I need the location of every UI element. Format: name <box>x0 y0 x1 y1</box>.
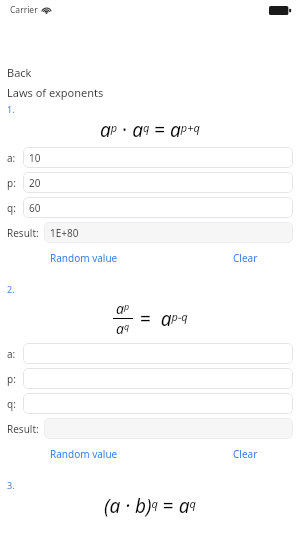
button[interactable]: 60 <box>23 197 293 218</box>
button[interactable]: Clear <box>231 445 260 463</box>
staticText: 2. <box>7 283 15 295</box>
staticText: (a · b)q = aq <box>104 493 196 519</box>
staticText: p: <box>7 176 16 190</box>
button[interactable] <box>23 393 293 414</box>
staticText: 1. <box>7 103 15 115</box>
staticText: a: <box>7 151 16 165</box>
staticText: Clear <box>233 251 258 265</box>
staticText: 10 <box>29 151 41 165</box>
staticText: p: <box>7 372 16 386</box>
staticText: q: <box>7 201 16 215</box>
staticText: 3. <box>7 479 15 491</box>
button[interactable]: Clear <box>231 249 260 267</box>
staticText: 20 <box>29 176 41 190</box>
staticText: 60 <box>29 201 41 215</box>
button[interactable] <box>23 368 293 389</box>
staticText: Random value <box>50 447 118 461</box>
staticText: ap <box>116 299 130 318</box>
staticText: q: <box>7 397 16 411</box>
staticText: aq <box>116 319 130 338</box>
staticText: Carrier <box>10 4 38 16</box>
button[interactable]: Random value <box>48 445 120 463</box>
staticText: Random value <box>50 251 118 265</box>
staticText: 1E+80 <box>50 226 79 240</box>
staticText: ap · aq = ap+q <box>100 117 200 143</box>
button[interactable]: Random value <box>48 249 120 267</box>
button[interactable]: 10 <box>23 147 293 168</box>
staticText: Laws of exponents <box>7 85 104 100</box>
staticText: a: <box>7 347 16 361</box>
button[interactable] <box>23 343 293 364</box>
button[interactable]: Back <box>7 64 300 81</box>
staticText: = ap−q <box>140 306 188 332</box>
staticText: Clear <box>233 447 258 461</box>
button[interactable]: 20 <box>23 172 293 193</box>
staticText: Result: <box>7 422 39 436</box>
staticText: Back <box>7 65 32 80</box>
staticText: Result: <box>7 226 39 240</box>
